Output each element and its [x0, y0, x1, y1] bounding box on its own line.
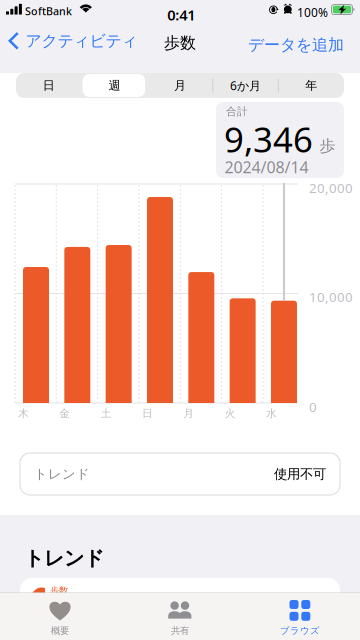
staticText: 20,000 [309, 179, 353, 197]
staticText: 概要 [51, 625, 69, 636]
staticText: 100% [297, 4, 328, 20]
staticText: データを追加 [248, 35, 344, 55]
staticText: アクティビティ [25, 31, 137, 51]
staticText: トレンド [34, 466, 90, 482]
button[interactable]: データを追加 [240, 32, 352, 58]
staticText: 週 [108, 78, 120, 93]
button[interactable]: トレンド [20, 453, 340, 495]
button[interactable]: 年 [278, 73, 344, 98]
staticText: 金 [59, 407, 70, 420]
button[interactable]: 6か月 [213, 73, 278, 98]
staticText: 日 [43, 78, 55, 93]
staticText: 合計 [226, 105, 248, 118]
staticText: 9,346 [224, 116, 313, 162]
staticText: 歩数 [50, 585, 68, 596]
staticText: 年 [305, 78, 317, 93]
staticText: 歩 [320, 136, 336, 156]
button[interactable]: アクティビティ [1, 28, 145, 54]
button[interactable]: 月 [147, 73, 213, 98]
staticText: 日 [142, 407, 153, 420]
staticText: 月 [183, 407, 194, 420]
staticText: 火 [225, 407, 236, 420]
staticText: 0 [309, 398, 317, 416]
button[interactable]: 週 [82, 73, 147, 98]
staticText: 歩数 [164, 33, 196, 53]
staticText: トレンド [24, 546, 104, 571]
staticText: 0:41 [167, 5, 195, 24]
staticText: 6か月 [230, 77, 261, 93]
staticText: 共有 [171, 625, 189, 636]
staticText: 月 [174, 78, 186, 93]
staticText: 使用不可 [274, 466, 326, 482]
button[interactable]: 日 [16, 73, 82, 98]
button[interactable]: 共有 [120, 593, 240, 640]
staticText: 2024/08/14 [224, 156, 308, 178]
button[interactable]: ブラウズ [240, 593, 360, 640]
staticText: 10,000 [309, 288, 353, 306]
staticText: ブラウズ [280, 625, 320, 636]
staticText: SoftBank [25, 4, 72, 18]
staticText: 土 [101, 407, 112, 420]
button[interactable]: 概要 [0, 593, 120, 640]
staticText: 木 [18, 407, 29, 420]
staticText: 水 [266, 407, 277, 420]
